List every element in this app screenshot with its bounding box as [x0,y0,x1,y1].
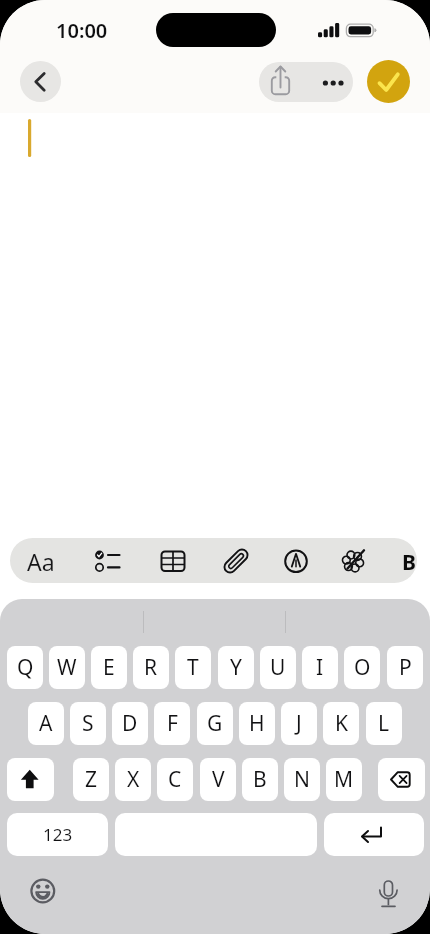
button[interactable]: G [197,702,233,745]
button[interactable] [306,62,353,102]
button[interactable]: C [157,758,193,801]
staticText: J [296,709,302,738]
button[interactable] [7,758,54,801]
button[interactable]: K [323,702,359,745]
button[interactable] [128,538,180,583]
button[interactable] [73,538,125,583]
staticText: N [294,765,310,794]
staticText: M [334,765,354,794]
staticText: 123 [43,823,73,846]
staticText: 10:00 [56,17,108,44]
staticText: G [207,709,223,738]
button[interactable]: F [154,702,190,745]
button[interactable]: M [326,758,362,801]
staticText: L [378,709,390,738]
button[interactable]: X [115,758,151,801]
button[interactable] [238,538,290,583]
staticText: A [39,709,53,738]
button[interactable]: D [112,702,148,745]
button[interactable] [20,61,61,102]
staticText: P [399,653,412,682]
button[interactable] [259,62,306,102]
button[interactable]: J [281,702,317,745]
staticText: C [168,765,182,794]
button[interactable] [324,813,424,856]
button[interactable]: W [49,646,85,689]
button[interactable] [367,60,410,103]
staticText: S [82,709,94,738]
staticText: O [354,653,371,682]
button[interactable]: T [175,646,211,689]
button[interactable] [183,538,235,583]
button[interactable]: Q [7,646,43,689]
staticText: Q [17,653,34,682]
staticText: B [253,765,267,794]
staticText: D [122,709,138,738]
staticText: I [316,653,324,682]
button[interactable]: B [242,758,278,801]
button[interactable] [18,538,70,583]
button[interactable]: O [344,646,380,689]
staticText: U [270,653,286,682]
button[interactable]: S [70,702,106,745]
staticText: H [249,709,265,738]
staticText: F [167,709,178,738]
button[interactable] [293,538,345,583]
staticText: Aa [27,546,55,576]
staticText: Y [230,653,242,682]
staticText: Z [85,765,98,794]
button[interactable] [348,538,400,583]
button[interactable]: V [200,758,236,801]
staticText: T [187,653,199,682]
button[interactable]: I [302,646,338,689]
staticText: K [335,709,348,738]
staticText: R [144,653,158,682]
button[interactable]: 123 [7,813,108,856]
button[interactable] [115,813,317,856]
button[interactable]: N [284,758,320,801]
staticText: V [212,765,225,794]
button[interactable]: L [366,702,402,745]
button[interactable]: E [91,646,127,689]
button[interactable]: R [133,646,169,689]
button[interactable]: P [387,646,423,689]
staticText: E [103,653,115,682]
button[interactable]: A [28,702,64,745]
button[interactable]: Z [73,758,109,801]
staticText: B [402,548,416,575]
staticText: X [127,765,140,794]
button[interactable] [28,876,60,908]
button[interactable]: H [239,702,275,745]
button[interactable] [372,876,404,908]
staticText: W [57,653,77,682]
button[interactable]: Y [218,646,254,689]
button[interactable] [378,758,425,801]
button[interactable]: U [260,646,296,689]
